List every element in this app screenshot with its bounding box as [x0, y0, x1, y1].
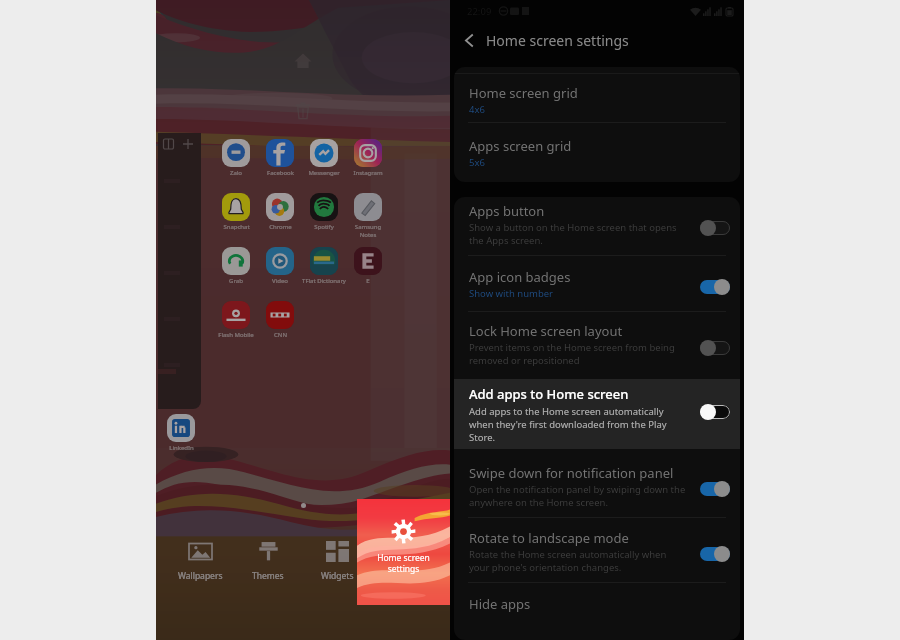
button[interactable] [266, 301, 294, 329]
staticText: Rotate to landscape mode [469, 529, 629, 547]
staticText: Flash Mobile [218, 331, 254, 339]
staticText: 22:09 [467, 5, 492, 18]
staticText: Wallpapers [178, 570, 223, 582]
staticText: Spotify [314, 223, 334, 231]
button[interactable]: Home screen grid [454, 78, 740, 124]
staticText: your phone's orientation changes. [469, 561, 622, 574]
staticText: Instagram [353, 169, 383, 177]
staticText: Zalo [230, 169, 242, 177]
button[interactable]: Home screen settings [357, 499, 450, 605]
staticText: Instagram [353, 169, 383, 177]
button[interactable]: Hide apps [454, 589, 740, 621]
staticText: Chrome [269, 223, 292, 231]
button[interactable] [266, 193, 294, 221]
button[interactable]: Apps button [454, 199, 740, 253]
button[interactable] [354, 247, 382, 275]
button[interactable] [310, 139, 338, 167]
button[interactable] [167, 414, 195, 442]
button[interactable] [266, 301, 294, 329]
staticText: Facebook [267, 169, 294, 177]
staticText: TFlat Dictionary [302, 277, 346, 285]
staticText: when they're first downloaded from the P… [469, 418, 667, 431]
button[interactable]: Wallpapers [170, 541, 230, 582]
staticText: CNN [274, 331, 287, 339]
button[interactable]: Toggle [700, 546, 730, 562]
button[interactable]: Toggle [700, 340, 730, 356]
staticText: anywhere on the Home screen. [469, 496, 608, 509]
button[interactable]: Themes [238, 541, 298, 582]
button[interactable]: Rotate to landscape mode [454, 526, 740, 580]
button[interactable] [222, 301, 250, 329]
staticText: Samsung Notes [346, 223, 390, 239]
button[interactable]: Lock Home screen layout [454, 319, 740, 373]
button[interactable] [310, 193, 338, 221]
staticText: Spotify [314, 223, 334, 231]
staticText: removed or repositioned [469, 354, 580, 367]
staticText: 4x6 [469, 103, 485, 116]
staticText: 5x6 [469, 156, 485, 169]
staticText: Home screen settings [377, 552, 430, 574]
staticText: Grab [229, 277, 243, 285]
button[interactable]: Add apps to Home screen [454, 379, 740, 449]
button[interactable] [354, 139, 382, 167]
button[interactable]: Toggle [700, 220, 730, 236]
button[interactable] [266, 247, 294, 275]
button[interactable] [354, 193, 382, 221]
button[interactable] [354, 193, 382, 221]
button[interactable]: Navigate up [450, 22, 486, 58]
staticText: Hide apps [469, 595, 531, 613]
button[interactable] [222, 301, 250, 329]
button[interactable] [310, 139, 338, 167]
button[interactable] [354, 247, 382, 275]
button[interactable] [222, 247, 250, 275]
button[interactable] [266, 139, 294, 167]
button[interactable] [222, 247, 250, 275]
button[interactable] [310, 193, 338, 221]
button[interactable] [222, 193, 250, 221]
button[interactable]: Toggle [700, 481, 730, 497]
button[interactable]: App icon badges [454, 265, 740, 306]
button[interactable]: Swipe down for notification panel [454, 461, 740, 515]
staticText: E [366, 277, 370, 285]
staticText: Snapchat [223, 223, 250, 231]
staticText: Rotate the Home screen automatically whe… [469, 548, 667, 561]
staticText: Prevent items on the Home screen from be… [469, 341, 675, 354]
button[interactable]: Widgets [307, 541, 367, 582]
staticText: LinkedIn [169, 444, 194, 452]
button[interactable] [222, 139, 250, 167]
staticText: Messenger [308, 169, 340, 177]
staticText: Zalo [230, 169, 242, 177]
staticText: Widgets [321, 570, 354, 582]
button[interactable] [266, 193, 294, 221]
button[interactable]: Wallpapers [170, 541, 230, 582]
staticText: Themes [252, 570, 284, 582]
button[interactable]: Themes [238, 541, 298, 582]
button[interactable] [167, 414, 195, 442]
staticText: Add apps to the Home screen automaticall… [469, 405, 664, 418]
staticText: Flash Mobile [218, 331, 254, 339]
button[interactable] [266, 247, 294, 275]
button[interactable]: Toggle [700, 279, 730, 295]
button[interactable] [310, 247, 338, 275]
button[interactable]: Apps screen grid [454, 131, 740, 177]
staticText: Add apps to Home screen [469, 385, 629, 403]
staticText: Samsung Notes [346, 223, 390, 239]
staticText: Messenger [308, 169, 340, 177]
button[interactable]: Widgets [307, 541, 367, 582]
staticText: TFlat Dictionary [302, 277, 346, 285]
staticText: Apps screen grid [469, 137, 572, 155]
button[interactable]: Add apps to Home screen toggle [700, 404, 730, 420]
button[interactable] [354, 139, 382, 167]
button[interactable] [222, 139, 250, 167]
staticText: E [366, 277, 370, 285]
button[interactable] [266, 139, 294, 167]
staticText: Chrome [269, 223, 292, 231]
button[interactable] [310, 247, 338, 275]
staticText: the Apps screen. [469, 234, 543, 247]
staticText: Widgets [321, 570, 354, 582]
staticText: Open the notification panel by swiping d… [469, 483, 686, 496]
staticText: Grab [229, 277, 243, 285]
staticText: Store. [469, 431, 496, 444]
button[interactable] [222, 193, 250, 221]
staticText: Show a button on the Home screen that op… [469, 221, 677, 234]
